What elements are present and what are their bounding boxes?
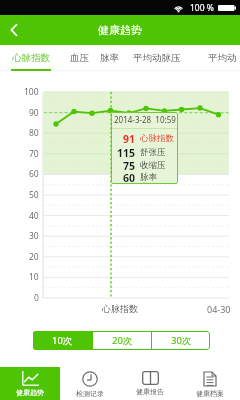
button[interactable]: 血压	[69, 45, 89, 71]
staticText: 健康档案	[196, 389, 224, 398]
staticText: 舒张压	[140, 147, 166, 158]
button[interactable]: 20次	[93, 331, 151, 350]
staticText: 0	[34, 292, 39, 304]
button[interactable]: 检测记录	[60, 367, 120, 400]
staticText: 脉率	[100, 52, 119, 64]
staticText: 健康报告	[136, 387, 164, 396]
button[interactable]: 健康趋势	[0, 367, 60, 400]
staticText: 10	[29, 271, 39, 283]
staticText: 115	[117, 146, 136, 159]
staticText: 90	[29, 107, 39, 119]
staticText: 检测记录	[76, 389, 104, 398]
staticText: 心脉指数	[102, 303, 138, 314]
staticText: 心脉指数	[12, 52, 50, 64]
staticText: 10次	[52, 334, 73, 347]
staticText: 30	[29, 230, 39, 242]
staticText: 平均动脉压	[133, 52, 181, 64]
staticText: 40	[29, 210, 39, 222]
staticText: 脉率	[140, 172, 157, 183]
staticText: 健康趋势	[98, 23, 142, 37]
staticText: 80	[29, 127, 39, 139]
staticText: 20次	[112, 334, 133, 347]
staticText: 100	[24, 86, 39, 98]
button[interactable]: 平均动	[204, 45, 240, 71]
button[interactable]: 30次	[152, 331, 210, 350]
staticText: 50	[29, 189, 39, 201]
staticText: 心脉指数	[140, 133, 174, 144]
staticText: 血压	[70, 52, 89, 64]
button[interactable]: 脉率	[99, 45, 119, 71]
staticText: 收缩压	[140, 160, 166, 171]
staticText: 75	[123, 159, 136, 172]
button[interactable]: 健康档案	[180, 367, 240, 400]
staticText: 60	[123, 171, 136, 184]
staticText: 60	[29, 168, 39, 180]
staticText: 健康趋势	[16, 388, 44, 397]
button[interactable]: 10次	[33, 331, 92, 350]
staticText: 70	[29, 148, 39, 160]
button[interactable]: Back	[0, 15, 28, 45]
staticText: 91	[123, 132, 136, 145]
staticText: 100 %	[190, 2, 214, 14]
staticText: 04-30	[207, 303, 231, 315]
button[interactable]: 健康报告	[120, 367, 180, 400]
staticText: 平均动	[208, 52, 237, 64]
button[interactable]: 心脉指数	[11, 45, 51, 71]
button[interactable]: 平均动脉压	[132, 45, 182, 71]
staticText: 2014-3-28 10:59	[114, 114, 176, 125]
staticText: 30次	[171, 334, 192, 347]
staticText: 20	[29, 251, 39, 263]
